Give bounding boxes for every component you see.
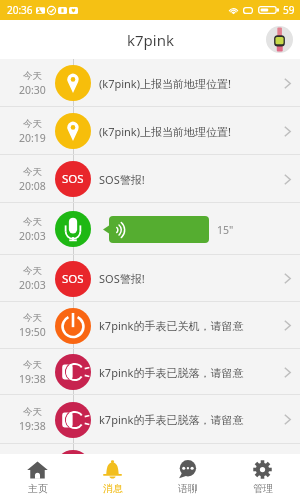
staticText: 20:03 (19, 229, 46, 243)
button[interactable]: 语聊 (150, 454, 225, 500)
staticText: k7pink的手表已脱落，请留意 (99, 365, 244, 380)
button[interactable]: 今天 (0, 59, 300, 107)
staticText: SOS (62, 271, 84, 287)
staticText: 20:03 (19, 278, 46, 292)
staticText: 今天 (23, 70, 42, 82)
button[interactable]: 消息 (75, 454, 150, 500)
button[interactable]: 今天 (0, 107, 300, 155)
staticText: 59 (283, 3, 295, 17)
staticText: 20:08 (19, 179, 46, 193)
button[interactable]: 今天 (0, 395, 300, 444)
staticText: k7pink的手表已脱落，请留意 (99, 412, 244, 427)
staticText: 20:30 (19, 83, 46, 97)
staticText: 19:50 (19, 325, 46, 339)
button[interactable]: 今天 (0, 255, 300, 302)
button[interactable]: 主页 (0, 454, 75, 500)
staticText: SOS警报! (99, 172, 145, 187)
staticText: 20:19 (19, 131, 46, 145)
staticText: 管理 (253, 482, 273, 495)
staticText: 20:36 (7, 3, 33, 17)
staticText: k7pink (127, 30, 174, 50)
staticText: (k7pink)上报当前地理位置! (99, 124, 231, 139)
staticText: 今天 (23, 359, 42, 371)
staticText: k7pink的手表已关机，请留意 (99, 318, 244, 333)
staticText: 今天 (23, 312, 42, 324)
button[interactable]: Profile avatar (266, 26, 293, 53)
staticText: SOS警报! (99, 271, 145, 286)
staticText: 19:38 (19, 419, 46, 433)
staticText: 消息 (103, 482, 123, 495)
staticText: 今天 (23, 166, 42, 178)
staticText: 今天 (23, 406, 42, 418)
button[interactable]: 今天 (0, 203, 300, 255)
button[interactable]: 管理 (225, 454, 300, 500)
staticText: 今天 (23, 265, 42, 277)
staticText: 19:38 (19, 372, 46, 386)
button[interactable]: 今天 (0, 349, 300, 395)
button[interactable]: 今天 (0, 444, 300, 454)
staticText: 今天 (23, 118, 42, 130)
staticText: (k7pink)上报当前地理位置! (99, 76, 231, 91)
staticText: 语聊 (178, 482, 198, 495)
button[interactable]: 今天 (0, 155, 300, 203)
staticText: 15" (217, 223, 234, 237)
staticText: 今天 (23, 216, 42, 228)
staticText: SOS (62, 171, 84, 187)
button[interactable]: 今天 (0, 302, 300, 349)
staticText: 主页 (28, 482, 48, 495)
